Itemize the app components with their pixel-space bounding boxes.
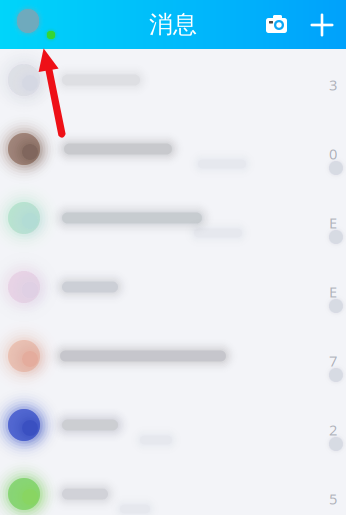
button[interactable]: Conversation bbox=[0, 402, 346, 471]
staticText: 2 bbox=[329, 420, 337, 439]
staticText: 7 bbox=[329, 351, 337, 370]
button[interactable]: Conversation bbox=[0, 126, 346, 195]
staticText: E bbox=[329, 213, 337, 232]
staticText: E bbox=[329, 282, 337, 301]
button[interactable]: Conversation bbox=[0, 471, 346, 515]
button[interactable]: Profile bbox=[0, 0, 56, 49]
button[interactable]: Conversation bbox=[0, 333, 346, 402]
button[interactable]: Conversation bbox=[0, 57, 346, 126]
button[interactable]: Conversation bbox=[0, 264, 346, 333]
staticText: 3 bbox=[329, 75, 337, 94]
button[interactable]: Add bbox=[305, 8, 339, 42]
button[interactable]: Camera bbox=[259, 8, 293, 42]
staticText: 0 bbox=[329, 144, 337, 163]
staticText: 消息 bbox=[149, 10, 197, 39]
button[interactable]: Conversation bbox=[0, 195, 346, 264]
staticText: 5 bbox=[329, 489, 337, 508]
